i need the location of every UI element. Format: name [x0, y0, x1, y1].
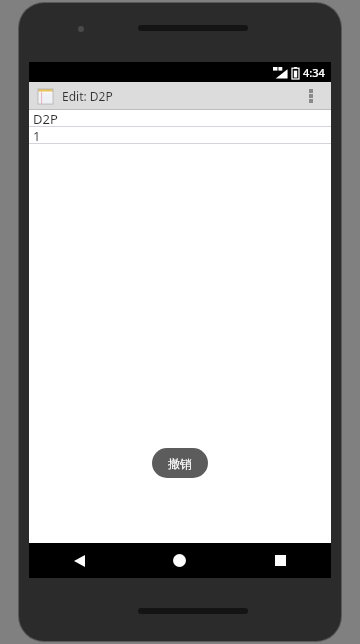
staticText: D2P: [33, 110, 58, 126]
button[interactable]: Home: [129, 543, 230, 578]
staticText: 4:34: [303, 65, 325, 80]
button[interactable]: 1: [29, 127, 331, 144]
button[interactable]: Recent apps: [230, 543, 331, 578]
staticText: 撤销: [168, 456, 192, 471]
staticText: Edit: D2P: [62, 88, 113, 104]
button[interactable]: Back: [29, 543, 129, 578]
staticText: 1: [33, 127, 41, 143]
button[interactable]: 撤销: [152, 448, 208, 478]
button[interactable]: D2P: [29, 110, 331, 127]
button[interactable]: More options: [300, 82, 322, 110]
